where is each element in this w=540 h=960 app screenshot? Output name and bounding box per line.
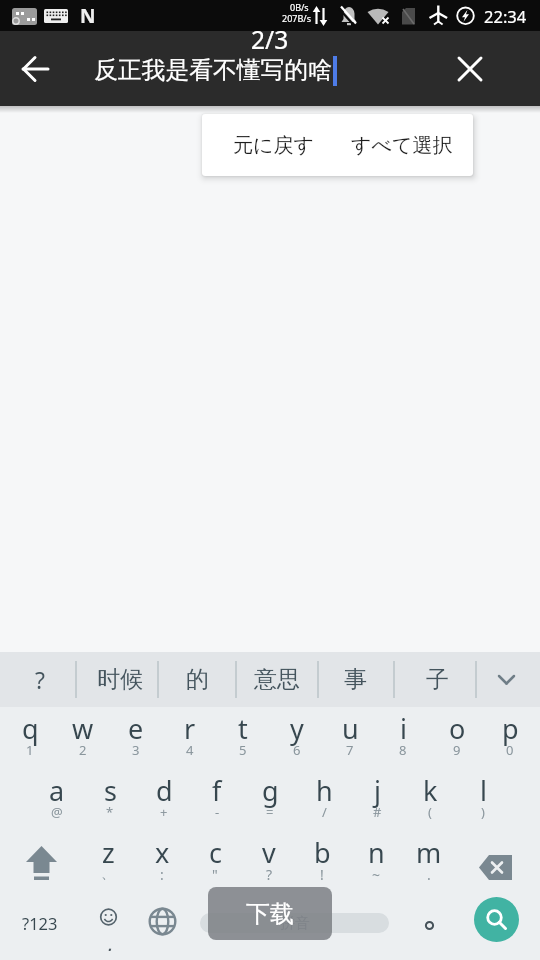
staticText: h <box>316 772 333 809</box>
staticText: a <box>49 772 65 809</box>
staticText: s <box>104 772 117 809</box>
button[interactable]: s <box>83 769 137 831</box>
staticText: ( <box>428 803 432 821</box>
staticText: 2 <box>79 741 87 759</box>
staticText: i <box>400 710 407 747</box>
staticText: @ <box>51 803 63 821</box>
button[interactable] <box>482 652 540 707</box>
staticText: q <box>22 710 39 747</box>
button[interactable]: e <box>109 707 163 769</box>
button[interactable]: j <box>350 769 404 831</box>
staticText: 的 <box>186 665 209 694</box>
staticText: j <box>374 772 381 809</box>
button[interactable]: すべて選択 <box>342 114 462 176</box>
button[interactable]: o <box>430 707 484 769</box>
button[interactable] <box>446 31 494 106</box>
staticText: o <box>449 710 466 747</box>
staticText: e <box>128 710 144 747</box>
button[interactable]: k <box>403 769 457 831</box>
staticText: b <box>314 834 331 871</box>
button[interactable]: x <box>135 831 189 893</box>
staticText: ? <box>266 865 273 883</box>
staticText: y <box>290 710 304 747</box>
button[interactable]: b <box>295 831 349 893</box>
staticText: ) <box>481 803 485 821</box>
staticText: - <box>215 803 220 821</box>
staticText: u <box>342 710 359 747</box>
button[interactable]: 子 <box>401 652 473 707</box>
staticText: 元に戻す <box>233 133 314 158</box>
button[interactable]: c <box>188 831 242 893</box>
staticText: v <box>262 834 276 871</box>
button[interactable]: t <box>216 707 270 769</box>
staticText: 1 <box>26 741 34 759</box>
button[interactable]: y <box>270 707 324 769</box>
button[interactable]: i <box>376 707 430 769</box>
button[interactable]: 的 <box>161 652 233 707</box>
staticText: 9 <box>453 741 461 759</box>
button[interactable]: p <box>483 707 537 769</box>
staticText: ~ <box>372 865 381 883</box>
staticText: 反正我是看不懂写的啥 <box>94 55 332 85</box>
button[interactable]: h <box>297 769 351 831</box>
staticText: 5 <box>239 741 247 759</box>
staticText: n <box>368 834 385 871</box>
button[interactable]: ? <box>4 652 76 707</box>
button[interactable]: m <box>402 831 456 893</box>
staticText: 0B/s <box>290 1 309 13</box>
staticText: 意思 <box>254 665 300 694</box>
button[interactable]: q <box>3 707 57 769</box>
staticText: k <box>423 772 438 809</box>
staticText: 、 <box>101 865 115 883</box>
button[interactable]: w <box>56 707 110 769</box>
staticText: 下载 <box>246 899 294 929</box>
staticText: = <box>266 803 274 821</box>
button[interactable]: z <box>81 831 135 893</box>
button[interactable]: ?123 <box>8 894 72 960</box>
staticText: 22:34 <box>484 5 527 27</box>
staticText: 7 <box>346 741 354 759</box>
button[interactable] <box>403 894 456 960</box>
staticText: t <box>238 710 248 747</box>
button[interactable]: a <box>30 769 84 831</box>
button[interactable] <box>12 31 60 106</box>
staticText: ? <box>35 664 45 695</box>
staticText: . <box>427 865 431 883</box>
staticText: 207B/s <box>282 12 311 24</box>
button[interactable]: 事 <box>319 652 391 707</box>
button[interactable]: 时候 <box>84 652 156 707</box>
staticText: f <box>212 772 222 809</box>
staticText: 事 <box>344 665 367 694</box>
staticText: ?123 <box>22 912 58 934</box>
button[interactable]: g <box>243 769 297 831</box>
button[interactable]: r <box>163 707 217 769</box>
staticText: # <box>373 803 382 821</box>
button[interactable]: d <box>137 769 191 831</box>
button[interactable] <box>136 894 189 960</box>
button[interactable] <box>474 897 519 942</box>
button[interactable]: 元に戻す <box>218 114 328 176</box>
staticText: : <box>160 865 164 883</box>
staticText: g <box>262 772 279 809</box>
button[interactable]: u <box>323 707 377 769</box>
staticText: , <box>107 927 113 951</box>
staticText: 拼音 <box>280 914 310 933</box>
staticText: r <box>184 710 196 747</box>
button[interactable]: 拼音 <box>200 913 389 933</box>
staticText: z <box>102 834 115 871</box>
button[interactable]: n <box>349 831 403 893</box>
staticText: すべて選択 <box>351 133 453 158</box>
button[interactable] <box>8 831 74 893</box>
staticText: 3 <box>132 741 140 759</box>
staticText: 2/3 <box>251 23 289 56</box>
staticText: + <box>160 803 168 821</box>
staticText: l <box>480 772 487 809</box>
staticText: 子 <box>426 665 449 694</box>
button[interactable] <box>466 831 532 893</box>
staticText: 6 <box>293 741 301 759</box>
button[interactable]: , <box>82 894 135 960</box>
button[interactable]: v <box>242 831 296 893</box>
button[interactable]: f <box>190 769 244 831</box>
button[interactable]: 意思 <box>241 652 313 707</box>
button[interactable]: l <box>456 769 510 831</box>
